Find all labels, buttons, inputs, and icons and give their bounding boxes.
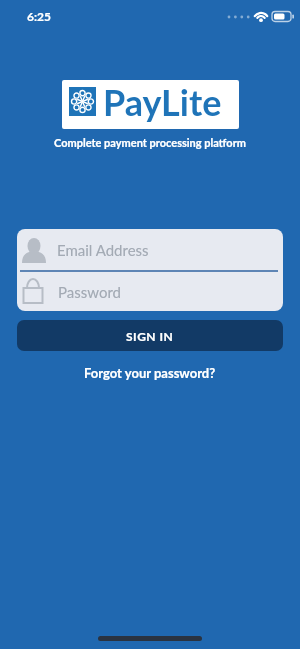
staticText: 6:25 <box>27 9 51 23</box>
button[interactable]: SIGN IN <box>17 320 283 351</box>
staticText: SIGN IN <box>126 329 174 343</box>
staticText: Email Address <box>57 241 149 259</box>
button[interactable]: Forgot your password? <box>84 365 216 381</box>
staticText: PayLite <box>103 80 222 123</box>
staticText: Password <box>58 283 121 301</box>
button[interactable]: Email Address <box>17 229 283 270</box>
staticText: Complete payment processing platform <box>54 136 246 149</box>
button[interactable]: Password <box>17 272 283 311</box>
